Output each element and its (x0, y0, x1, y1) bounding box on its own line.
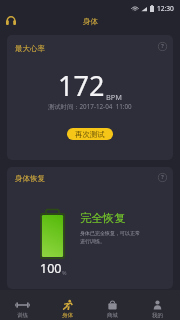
staticText: 测试时间：2017-12-04 11:00 (48, 102, 132, 111)
staticText: 172 (58, 67, 105, 104)
staticText: 100 (40, 260, 62, 277)
staticText: 身体恢复 (15, 174, 45, 183)
staticText: BPM (106, 92, 122, 102)
button[interactable]: 训练 (0, 290, 45, 320)
staticText: 再次测试 (75, 130, 105, 139)
staticText: ? (161, 42, 164, 50)
staticText: 12:30 (157, 4, 174, 13)
staticText: 我的 (152, 312, 163, 319)
button[interactable]: 我的 (135, 290, 180, 320)
staticText: 商城 (107, 312, 118, 319)
button[interactable]: 再次测试 (67, 128, 113, 140)
staticText: % (62, 269, 65, 276)
button[interactable]: 身体恢复 (7, 167, 173, 289)
button[interactable]: 最大心率 (7, 35, 173, 160)
button[interactable]: Help (154, 38, 170, 54)
staticText: 完全恢复 (80, 211, 126, 225)
staticText: ? (161, 173, 164, 181)
staticText: 身体已完全恢复，可以正常 进行训练。 (80, 230, 140, 245)
button[interactable]: Headphones (3, 12, 19, 28)
staticText: 身体 (62, 312, 73, 319)
staticText: 训练 (17, 312, 28, 319)
button[interactable]: 商城 (90, 290, 135, 320)
staticText: 最大心率 (15, 44, 45, 53)
button[interactable]: Help (154, 169, 170, 185)
button[interactable]: 身体 (45, 290, 90, 320)
staticText: 身体 (83, 17, 98, 26)
